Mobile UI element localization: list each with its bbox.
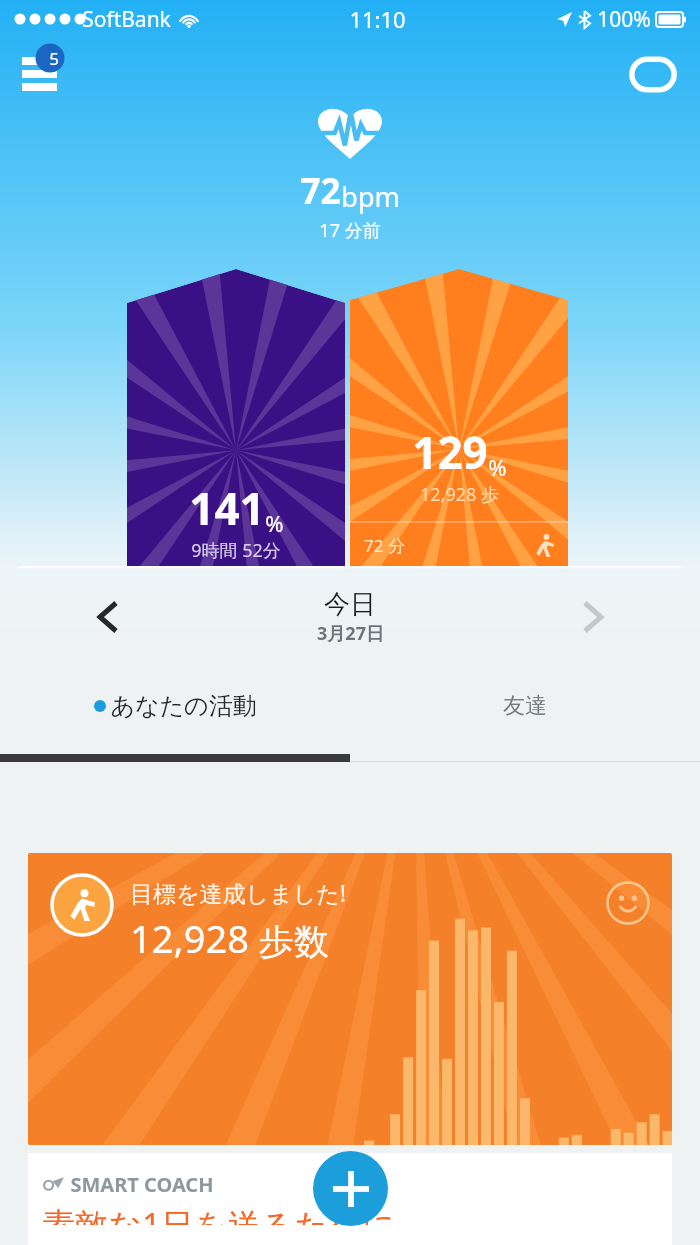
button[interactable]: Previous day (0, 586, 215, 648)
staticText: 5 (49, 47, 59, 69)
staticText: SMART COACH (70, 1171, 214, 1198)
staticText: 12,928 歩 (420, 482, 499, 507)
staticText: 141 (189, 478, 265, 538)
staticText: 17 分前 (319, 218, 381, 243)
staticText: 素敵な1日を送るために (42, 1202, 396, 1225)
button[interactable]: Device (630, 52, 676, 98)
button[interactable]: Add activity (313, 1151, 388, 1226)
button[interactable]: Next day (485, 586, 700, 648)
button[interactable]: Mood (606, 881, 650, 925)
staticText: 今日 (324, 588, 376, 621)
staticText: bpm (341, 178, 400, 215)
button[interactable]: SMART COACH (28, 1153, 672, 1245)
staticText: あなたの活動 (110, 691, 257, 721)
button[interactable]: Menu (16, 43, 72, 99)
staticText: SoftBank (82, 5, 171, 34)
staticText: 9時間 52分 (191, 538, 281, 563)
staticText: 目標を達成しました! (130, 877, 346, 908)
button[interactable]: 目標を達成しました! (28, 853, 672, 1145)
staticText: 100% (597, 5, 651, 34)
staticText: 友達 (503, 692, 547, 720)
button[interactable]: 友達 (350, 649, 700, 762)
staticText: % (488, 452, 507, 482)
staticText: % (265, 508, 284, 538)
staticText: 歩数 (259, 920, 329, 964)
staticText: 72 分 (364, 534, 405, 557)
staticText: 72 (300, 167, 341, 215)
button[interactable]: Heart rate (318, 107, 382, 159)
staticText: 12,928 (130, 912, 249, 964)
staticText: 129 (412, 422, 488, 482)
staticText: 3月27日 (317, 621, 384, 646)
button[interactable]: あなたの活動 (0, 649, 350, 762)
staticText: 11:10 (349, 4, 406, 34)
